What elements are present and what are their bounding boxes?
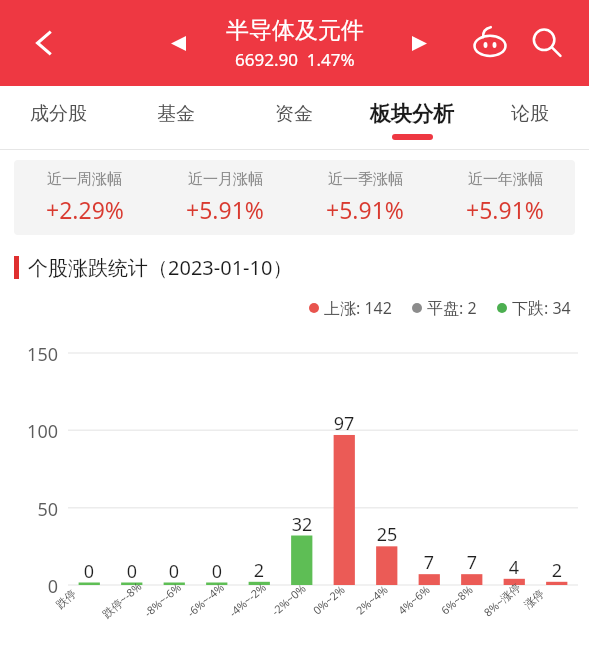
staticText: 2%~4% <box>353 581 391 618</box>
button[interactable]: 板块分析 <box>353 86 471 150</box>
button[interactable]: 近一季涨幅 <box>295 160 435 235</box>
staticText: 32 <box>281 512 323 537</box>
staticText: 8%~涨停 <box>480 579 523 620</box>
staticText: 下跌: 34 <box>512 297 571 319</box>
staticText: 50 <box>8 497 58 522</box>
button[interactable]: 近一周涨幅 <box>14 160 155 235</box>
staticText: +5.91% <box>186 194 264 225</box>
staticText: 0 <box>68 559 110 584</box>
button[interactable]: 基金 <box>117 86 235 150</box>
button[interactable]: Assistant <box>465 18 515 68</box>
staticText: 150 <box>8 342 58 367</box>
staticText: 近一周涨幅 <box>47 170 122 189</box>
staticText: 基金 <box>157 102 195 126</box>
button[interactable]: 上涨: 142 <box>309 297 392 319</box>
staticText: 近一季涨幅 <box>328 170 403 189</box>
button[interactable]: 近一月涨幅 <box>155 160 295 235</box>
staticText: +5.91% <box>326 194 404 225</box>
staticText: 板块分析 <box>370 101 454 127</box>
staticText: 成分股 <box>30 102 87 126</box>
button[interactable]: 下跌: 34 <box>497 297 571 319</box>
staticText: 资金 <box>275 102 313 126</box>
button[interactable]: 论股 <box>471 86 589 150</box>
staticText: 2 <box>238 558 280 583</box>
staticText: 2 <box>536 558 578 583</box>
button[interactable]: 资金 <box>235 86 353 150</box>
staticText: 0 <box>111 559 153 584</box>
button[interactable]: 近一年涨幅 <box>435 160 575 235</box>
staticText: 跌停~-8% <box>99 578 145 621</box>
staticText: -6%~-4% <box>184 579 227 620</box>
staticText: -4%~-2% <box>226 579 269 620</box>
staticText: 跌停 <box>53 586 79 611</box>
button[interactable]: Search <box>521 17 573 69</box>
staticText: 近一年涨幅 <box>468 170 543 189</box>
staticText: 25 <box>366 522 408 547</box>
staticText: 0 <box>8 574 58 599</box>
staticText: 平盘: 2 <box>427 297 477 319</box>
staticText: 上涨: 142 <box>324 297 392 319</box>
staticText: 论股 <box>511 102 549 126</box>
staticText: -2%~0% <box>268 580 309 619</box>
button[interactable]: 平盘: 2 <box>412 297 477 319</box>
staticText: 4 <box>493 555 535 580</box>
staticText: 个股涨跌统计（2023-01-10） <box>28 254 293 281</box>
staticText: 0 <box>196 559 238 584</box>
staticText: +5.91% <box>466 194 544 225</box>
staticText: 0%~2% <box>310 581 348 618</box>
button[interactable]: Back <box>18 17 70 69</box>
staticText: 0 <box>153 559 195 584</box>
staticText: 97 <box>323 411 365 436</box>
staticText: 近一月涨幅 <box>188 170 263 189</box>
staticText: 半导体及元件 <box>226 16 364 45</box>
staticText: 100 <box>8 419 58 444</box>
button[interactable]: Next sector <box>397 21 441 65</box>
button[interactable]: Previous sector <box>156 21 200 65</box>
staticText: 6%~8% <box>438 581 476 618</box>
button[interactable]: 成分股 <box>0 86 117 150</box>
staticText: 7 <box>408 550 450 575</box>
staticText: 涨停 <box>521 586 547 611</box>
staticText: +2.29% <box>46 194 124 225</box>
staticText: -8%~-6% <box>141 579 184 620</box>
staticText: 6692.90 1.47% <box>235 48 355 71</box>
staticText: 7 <box>451 550 493 575</box>
staticText: 4%~6% <box>395 581 433 618</box>
